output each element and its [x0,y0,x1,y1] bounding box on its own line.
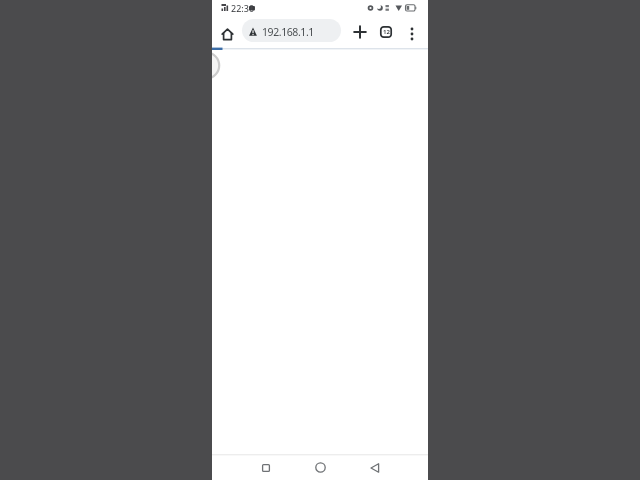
staticText: 22:30 [231,2,255,14]
button[interactable] [221,28,234,41]
staticText: 12 [383,28,390,36]
button[interactable] [254,455,278,480]
button[interactable]: 12 [376,22,396,42]
button[interactable] [363,455,387,480]
button[interactable] [308,455,332,480]
button[interactable] [404,24,420,44]
button[interactable] [350,22,370,42]
button[interactable]: 192.168.1.1 [242,19,341,42]
staticText: 192.168.1.1 [262,25,314,39]
